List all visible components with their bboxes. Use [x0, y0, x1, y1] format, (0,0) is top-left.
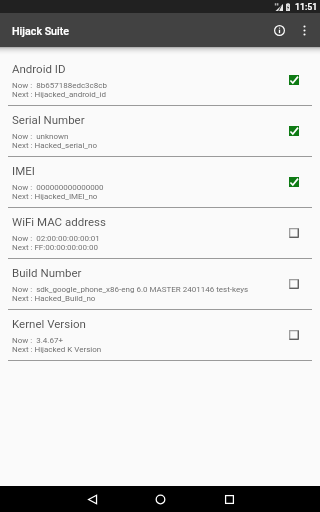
staticText: Next : Hacked_Build_no [12, 294, 96, 303]
staticText: 11:51 [295, 2, 318, 12]
button[interactable]: Kernel Version [0, 310, 320, 361]
button[interactable]: Recents [198, 486, 260, 512]
button[interactable]: Back [61, 486, 123, 512]
staticText: Next : Hacked_serial_no [12, 141, 97, 150]
staticText: Now : 8b657188edc3c8cb [12, 81, 107, 90]
staticText: Now : sdk_google_phone_x86-eng 6.0 MASTE… [12, 285, 249, 294]
button[interactable]: Toggle [283, 69, 305, 91]
staticText: Next : Hijacked_IMEI_no [12, 192, 98, 201]
staticText: Android ID [12, 62, 66, 75]
button[interactable]: Serial Number [0, 106, 320, 157]
button[interactable]: Toggle [283, 324, 305, 346]
staticText: Serial Number [12, 113, 85, 126]
button[interactable]: More options [288, 13, 320, 47]
staticText: Build Number [12, 266, 82, 279]
button[interactable]: Build Number [0, 259, 320, 310]
button[interactable]: Toggle [283, 171, 305, 193]
staticText: Kernel Version [12, 317, 86, 330]
button[interactable]: WiFi MAC address [0, 208, 320, 259]
button[interactable]: IMEI [0, 157, 320, 208]
button[interactable]: Info [270, 13, 288, 47]
staticText: Next : FF:00:00:00:00:00 [12, 243, 98, 252]
staticText: Hijack Suite [12, 25, 70, 38]
staticText: Now : 3.4.67+ [12, 336, 63, 345]
staticText: Next : Hijacked K Version [12, 345, 102, 354]
staticText: Now : 02:00:00:00:00:01 [12, 234, 100, 243]
staticText: WiFi MAC address [12, 215, 106, 228]
staticText: Next : Hijacked_android_id [12, 90, 106, 99]
button[interactable]: Toggle [283, 273, 305, 295]
button[interactable]: Toggle [283, 222, 305, 244]
button[interactable]: Android ID [0, 55, 320, 106]
button[interactable]: Toggle [283, 120, 305, 142]
button[interactable]: Home [123, 486, 198, 512]
staticText: Now : 000000000000000 [12, 183, 104, 192]
staticText: IMEI [12, 164, 35, 177]
staticText: Now : unknown [12, 132, 69, 141]
